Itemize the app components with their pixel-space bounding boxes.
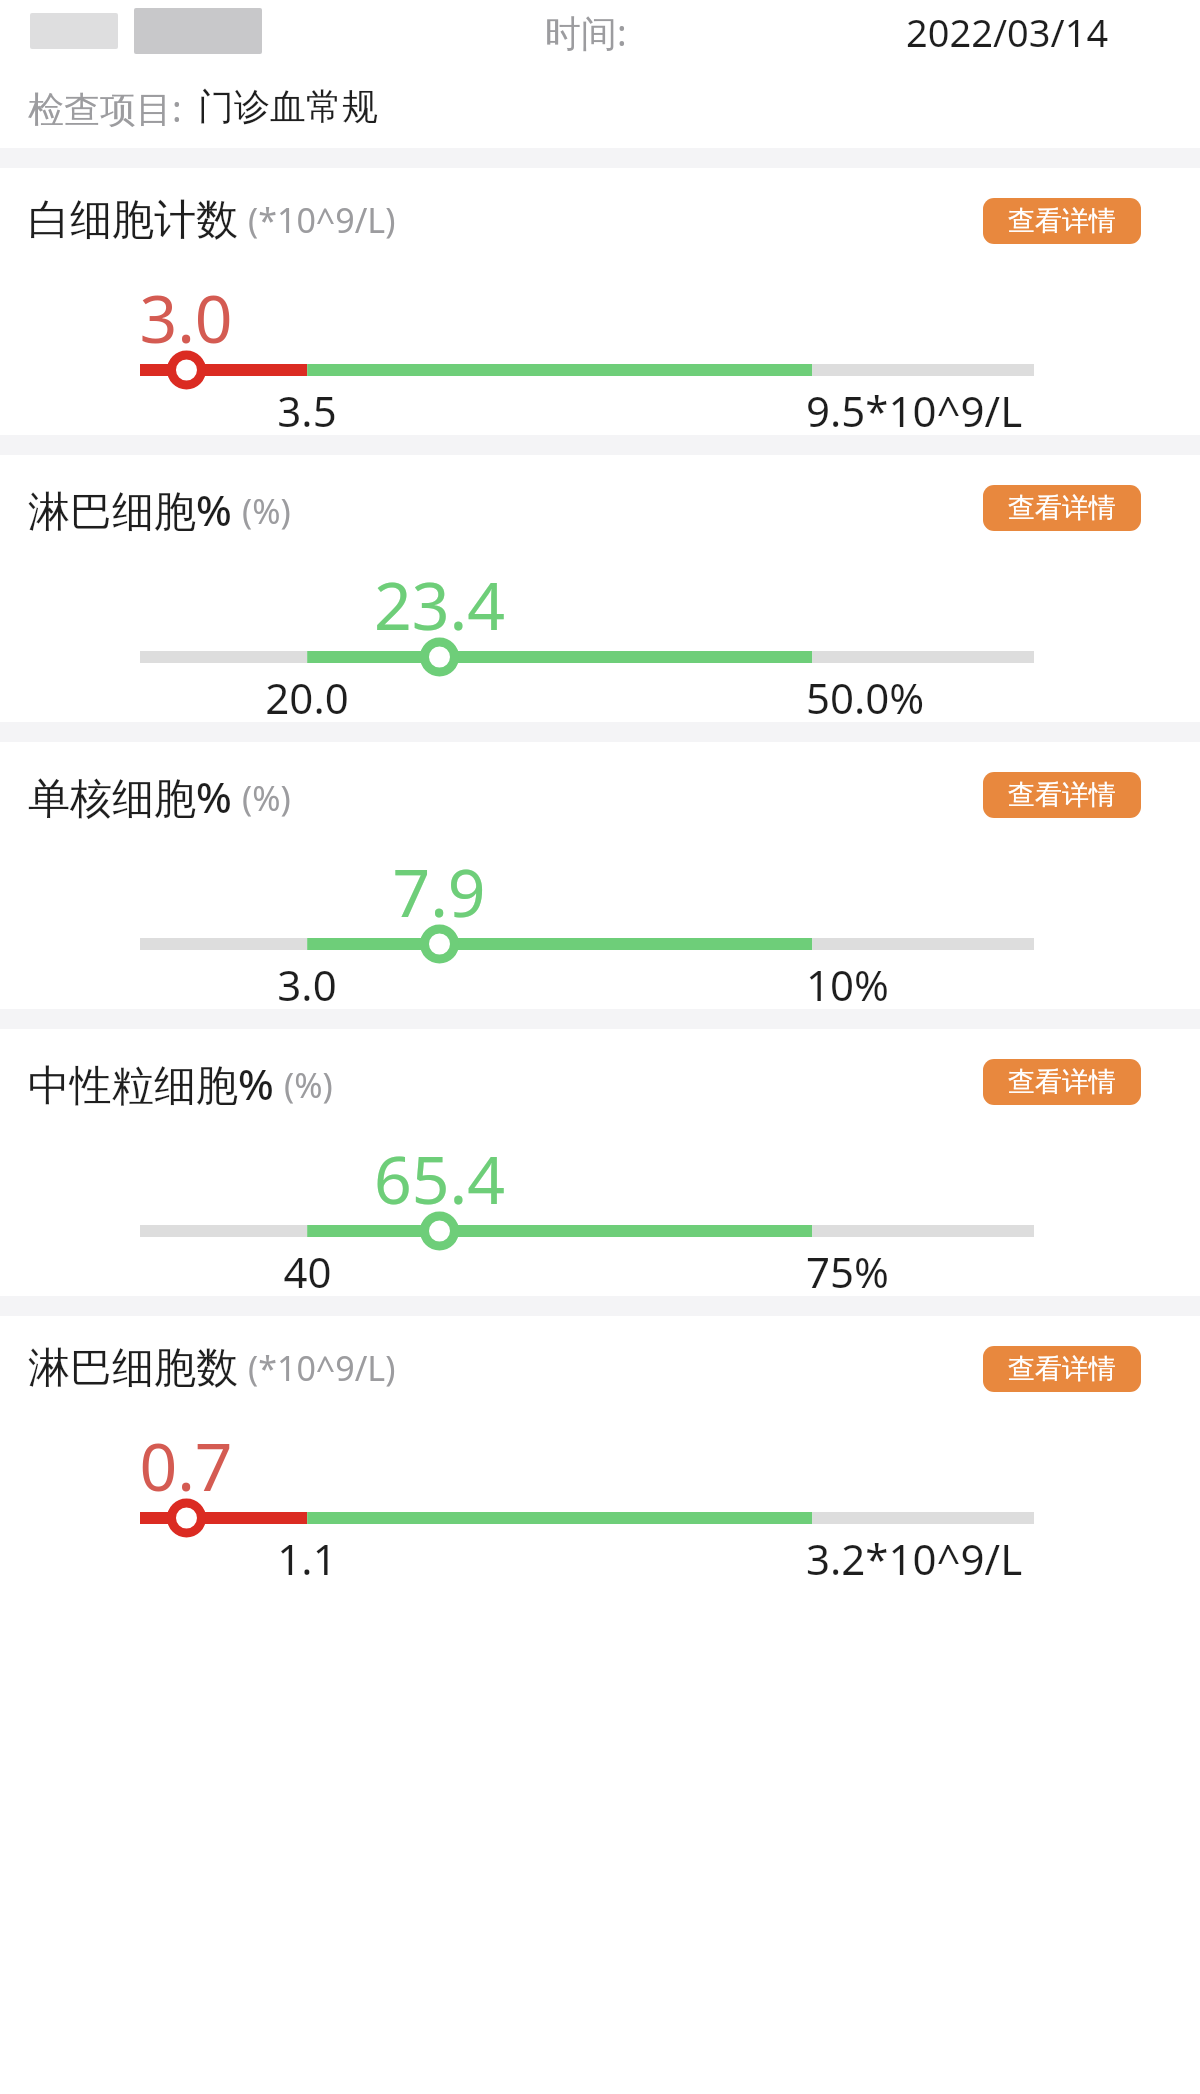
- button[interactable]: 查看详情: [983, 198, 1141, 244]
- staticText: 75%: [806, 1243, 889, 1300]
- staticText: 3.5: [277, 382, 337, 439]
- button[interactable]: 查看详情: [983, 1346, 1141, 1392]
- staticText: (%): [242, 488, 291, 534]
- staticText: 7.9: [392, 846, 486, 936]
- staticText: 查看详情: [1008, 1065, 1116, 1099]
- staticText: 淋巴细胞%: [28, 481, 232, 538]
- staticText: 中性粒细胞%: [28, 1055, 274, 1112]
- staticText: 10%: [806, 956, 889, 1013]
- button[interactable]: 查看详情: [983, 485, 1141, 531]
- button[interactable]: 查看详情: [983, 772, 1141, 818]
- staticText: 查看详情: [1008, 491, 1116, 525]
- staticText: (*10^9/L): [248, 197, 396, 243]
- staticText: 0.7: [139, 1420, 233, 1510]
- staticText: 门诊血常规: [198, 84, 378, 129]
- staticText: 查看详情: [1008, 1352, 1116, 1386]
- staticText: 50.0%: [806, 669, 925, 726]
- staticText: 65.4: [374, 1133, 505, 1223]
- staticText: 单核细胞%: [28, 768, 232, 825]
- staticText: (*10^9/L): [248, 1345, 396, 1391]
- staticText: (%): [284, 1062, 333, 1108]
- staticText: 20.0: [265, 669, 349, 726]
- staticText: 检查项目:: [28, 84, 182, 133]
- staticText: 3.0: [139, 272, 233, 362]
- staticText: (%): [242, 775, 291, 821]
- staticText: 白细胞计数: [28, 194, 238, 247]
- button[interactable]: 查看详情: [983, 1059, 1141, 1105]
- staticText: 2022/03/14: [906, 6, 1109, 58]
- staticText: 时间:: [545, 8, 627, 57]
- staticText: 23.4: [374, 559, 505, 649]
- staticText: 淋巴细胞数: [28, 1342, 238, 1395]
- staticText: 1.1: [277, 1530, 337, 1587]
- staticText: 40: [283, 1243, 332, 1300]
- staticText: 3.2*10^9/L: [806, 1530, 1023, 1587]
- staticText: 查看详情: [1008, 778, 1116, 812]
- staticText: 9.5*10^9/L: [806, 382, 1023, 439]
- staticText: 查看详情: [1008, 204, 1116, 238]
- staticText: 3.0: [277, 956, 337, 1013]
